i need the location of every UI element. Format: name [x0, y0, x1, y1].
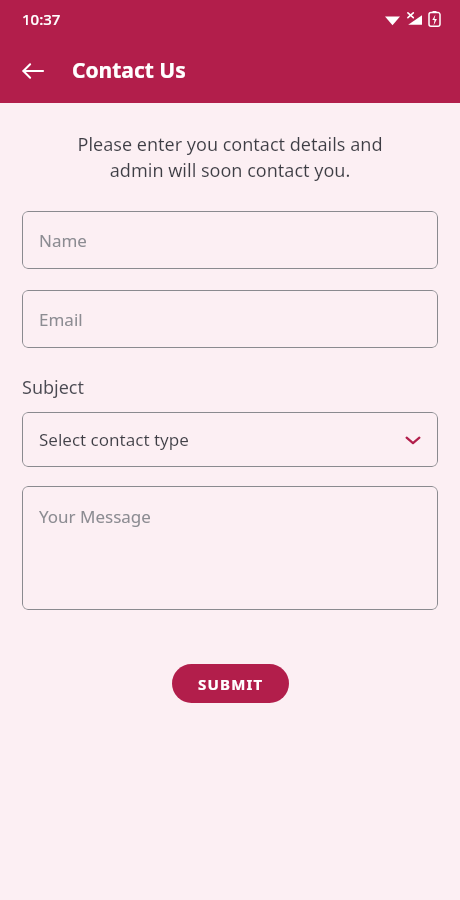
- staticText: Contact Us: [72, 56, 186, 85]
- staticText: 10:37: [22, 9, 61, 29]
- button[interactable]: Email: [22, 290, 438, 348]
- staticText: Your Message: [39, 505, 151, 528]
- staticText: Please enter you contact details and adm…: [22, 132, 438, 182]
- staticText: Email: [39, 308, 83, 331]
- staticText: Name: [39, 229, 87, 252]
- button[interactable]: Back: [12, 50, 54, 92]
- staticText: SUBMIT: [198, 674, 264, 694]
- button[interactable]: Select contact type: [22, 412, 438, 467]
- staticText: Select contact type: [39, 428, 189, 451]
- button[interactable]: SUBMIT: [172, 664, 289, 703]
- staticText: Subject: [22, 375, 85, 400]
- button[interactable]: Name: [22, 211, 438, 269]
- button[interactable]: Your Message: [22, 486, 438, 610]
